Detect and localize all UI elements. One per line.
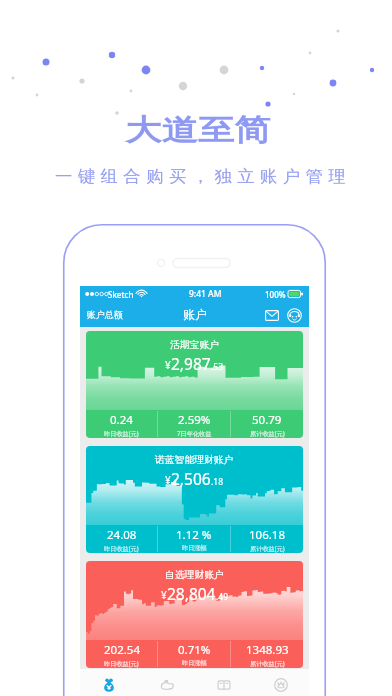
staticText: 大道至简 — [125, 112, 271, 148]
staticText: 昨日收益(元) — [104, 659, 139, 667]
staticText: 活期宝账户 — [170, 339, 219, 351]
staticText: .18 — [211, 476, 224, 488]
button[interactable]: 202.54 — [86, 640, 157, 668]
staticText: 账户 — [183, 307, 207, 322]
staticText: 0.24 — [110, 412, 133, 428]
staticText: 202.54 — [104, 642, 140, 658]
staticText: 24.08 — [107, 527, 137, 543]
staticText: 28,804 — [167, 583, 216, 604]
button[interactable]: Book — [195, 669, 252, 696]
staticText: 0.71% — [178, 642, 211, 658]
button[interactable]: Customer service — [285, 306, 303, 324]
staticText: 昨日收益(元) — [104, 429, 139, 437]
staticText: 昨日收益(元) — [104, 544, 139, 552]
button[interactable]: Profile — [252, 669, 309, 696]
staticText: Sketch — [108, 289, 134, 300]
button[interactable]: 24.08 — [86, 525, 157, 553]
staticText: 自选理财账户 — [165, 569, 224, 581]
staticText: 2,987 — [171, 353, 211, 374]
staticText: .53 — [211, 361, 224, 373]
button[interactable]: 0.24 — [86, 410, 157, 438]
button[interactable]: 106.18 — [231, 525, 303, 553]
staticText: 2,506 — [171, 468, 211, 489]
staticText: 昨日涨幅 — [182, 544, 207, 552]
staticText: 一键组合购买，独立账户管理 — [55, 167, 352, 187]
button[interactable]: Messages — [263, 306, 281, 324]
button[interactable]: 0.71% — [158, 640, 230, 668]
button[interactable]: 1.12 % — [158, 525, 230, 553]
staticText: 累计收益(元) — [250, 544, 285, 552]
button[interactable]: 50.79 — [231, 410, 303, 438]
button[interactable]: 账户总额 — [80, 305, 130, 324]
staticText: 1.12 % — [176, 527, 212, 543]
staticText: 50.79 — [252, 412, 282, 428]
staticText: 昨日涨幅 — [182, 659, 207, 667]
button[interactable]: 1348.93 — [231, 640, 303, 668]
staticText: 账户总额 — [87, 309, 123, 320]
staticText: .49 — [216, 591, 229, 603]
staticText: ¥ — [161, 588, 167, 602]
staticText: ¥ — [165, 473, 171, 487]
staticText: 1348.93 — [246, 642, 289, 658]
staticText: 累计收益(元) — [250, 429, 285, 437]
staticText: 100% — [265, 289, 286, 300]
button[interactable]: 诺蓝智能理财账户 — [86, 446, 303, 553]
staticText: 2.59% — [178, 412, 211, 428]
staticText: 106.18 — [249, 527, 285, 543]
staticText: 诺蓝智能理财账户 — [155, 454, 234, 466]
button[interactable]: 2.59% — [158, 410, 230, 438]
button[interactable]: Wallet — [80, 669, 138, 696]
staticText: ¥ — [165, 358, 171, 372]
staticText: 累计收益(元) — [250, 659, 285, 667]
button[interactable]: Savings — [138, 669, 195, 696]
staticText: 9:41 AM — [189, 288, 222, 300]
button[interactable]: 活期宝账户 — [86, 331, 303, 438]
button[interactable]: 自选理财账户 — [86, 561, 303, 668]
staticText: 7日年化收益 — [177, 429, 212, 437]
